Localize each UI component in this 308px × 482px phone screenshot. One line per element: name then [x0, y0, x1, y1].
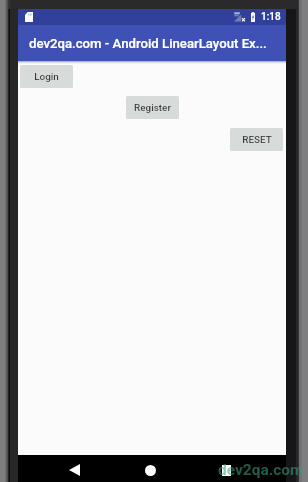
- button[interactable]: Login: [20, 65, 73, 88]
- button[interactable]: RESET: [230, 128, 283, 151]
- button[interactable]: Recents: [222, 465, 231, 476]
- button[interactable]: Back: [69, 464, 80, 476]
- button[interactable]: Register: [126, 96, 179, 119]
- staticText: Login: [34, 71, 59, 83]
- staticText: Register: [134, 102, 171, 114]
- button[interactable]: Home: [145, 465, 156, 476]
- staticText: dev2qa.com - Android LinearLayout Ex...: [29, 36, 267, 51]
- staticText: dev2qa.com: [218, 461, 304, 479]
- staticText: 1:18: [261, 11, 281, 23]
- staticText: RESET: [242, 134, 272, 146]
